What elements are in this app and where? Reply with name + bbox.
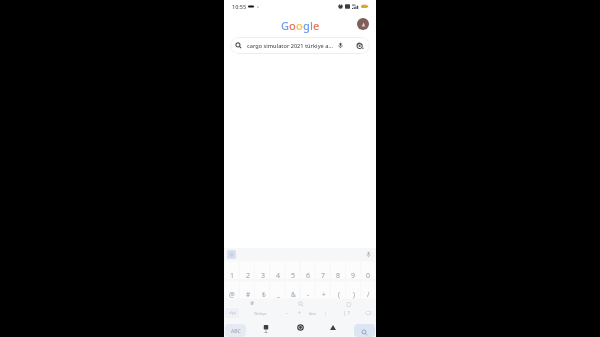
staticText: -: [286, 310, 288, 317]
button[interactable]: ;: [319, 307, 332, 319]
staticText: g: [303, 18, 310, 33]
staticText: 1: [230, 271, 235, 281]
staticText: 7: [321, 271, 326, 281]
button[interactable]: Search: [354, 324, 375, 337]
button[interactable]: 0: [361, 267, 376, 285]
button[interactable]: Türkçe: [240, 307, 280, 319]
button[interactable]: 9: [346, 267, 361, 285]
staticText: 9: [351, 271, 356, 281]
staticText: 2: [246, 271, 251, 281]
button[interactable]: Home: [289, 321, 311, 337]
button[interactable]: +: [293, 307, 306, 319]
staticText: 0: [366, 271, 371, 281]
button[interactable]: ABC: [225, 324, 246, 337]
button[interactable]: cargo simulator 2021 türkiye a…: [230, 37, 370, 54]
staticText: G: [281, 18, 289, 33]
button[interactable]: Voice input: [362, 248, 374, 260]
staticText: +: [322, 290, 326, 299]
staticText: ): [353, 290, 355, 299]
button[interactable]: +: [316, 286, 331, 302]
staticText: Türkçe: [254, 311, 267, 316]
button[interactable]: Google suggestions: [225, 248, 238, 261]
button[interactable]: &: [286, 286, 301, 302]
button[interactable]: _: [271, 286, 286, 302]
staticText: o: [289, 18, 296, 33]
staticText: 5: [291, 271, 296, 281]
staticText: @: [229, 290, 235, 299]
staticText: ABC: [231, 328, 241, 335]
staticText: /: [367, 290, 370, 299]
staticText: =\<: [229, 310, 236, 316]
staticText: ₺: [262, 290, 266, 299]
button[interactable]: /: [361, 286, 376, 302]
staticText: o: [296, 18, 303, 33]
button[interactable]: Google Lens: [354, 40, 365, 51]
button[interactable]: 5: [286, 267, 301, 285]
button[interactable]: 1: [224, 267, 240, 285]
staticText: ;: [325, 310, 327, 317]
staticText: -: [307, 290, 310, 299]
button[interactable]: *: [246, 298, 259, 310]
button[interactable]: 8: [331, 267, 346, 285]
staticText: cargo simulator 2021 türkiye a…: [247, 42, 333, 50]
staticText: l: [310, 18, 313, 33]
button[interactable]: 6: [301, 267, 316, 285]
button[interactable]: Search keyboard: [294, 298, 307, 310]
button[interactable]: ): [346, 286, 361, 302]
button[interactable]: Backspace: [360, 307, 376, 319]
staticText: e: [313, 18, 319, 33]
button[interactable]: -: [301, 286, 316, 302]
button[interactable]: Voice search: [335, 40, 346, 51]
button[interactable]: =\<: [225, 308, 239, 318]
button[interactable]: Back: [322, 321, 344, 337]
staticText: 8: [336, 271, 341, 281]
staticText: (: [338, 290, 340, 299]
button[interactable]: 4: [271, 267, 286, 285]
button[interactable]: Ara: [306, 307, 319, 319]
button[interactable]: Recent apps: [255, 321, 277, 337]
button[interactable]: 7: [316, 267, 331, 285]
staticText: 4: [276, 271, 281, 281]
staticText: &: [291, 290, 296, 299]
button[interactable]: (: [331, 286, 346, 302]
staticText: 6: [306, 271, 311, 281]
button[interactable]: ₺: [256, 286, 271, 302]
staticText: | ?: [343, 310, 350, 316]
button[interactable]: @: [224, 286, 240, 302]
button[interactable]: | ?: [332, 307, 360, 319]
staticText: #: [246, 290, 251, 299]
staticText: *: [250, 299, 255, 310]
button[interactable]: Google Account: [357, 18, 369, 30]
staticText: 3: [261, 271, 266, 281]
staticText: +: [298, 310, 301, 317]
button[interactable]: 2: [240, 267, 256, 285]
button[interactable]: #: [240, 286, 256, 302]
staticText: Ara: [309, 311, 316, 316]
button[interactable]: 3: [256, 267, 271, 285]
button[interactable]: Clipboard: [342, 298, 355, 310]
staticText: 10:55: [232, 3, 247, 10]
staticText: _: [277, 290, 280, 299]
